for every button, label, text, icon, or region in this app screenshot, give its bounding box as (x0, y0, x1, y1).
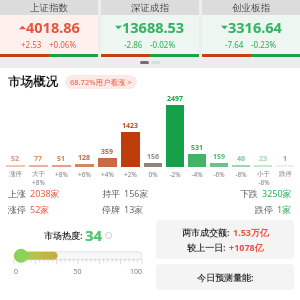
staticText: 68.72%用户看涨 > (70, 77, 132, 87)
staticText: 2038家 (30, 187, 60, 199)
staticText: -6% (213, 170, 225, 179)
button[interactable]: 两市成交额: (156, 220, 294, 259)
staticText: 今日预测量能: (197, 271, 254, 283)
button[interactable]: 市场热度: (6, 220, 150, 282)
staticText: 359 (101, 147, 114, 157)
staticText: -8% (235, 170, 247, 179)
staticText: -4% (191, 170, 203, 179)
staticText: 128 (78, 153, 91, 163)
button[interactable]: 40 (230, 91, 252, 187)
staticText: 持平 (102, 188, 120, 199)
staticText: 跌停 (255, 204, 273, 215)
button[interactable]: 77 (27, 91, 50, 187)
button[interactable]: 2497 (164, 91, 186, 187)
staticText: -0.02% (150, 39, 176, 50)
staticText: 13家 (124, 203, 144, 215)
staticText: 1.53万亿 (233, 226, 269, 238)
staticText: 市场热度: (44, 229, 83, 241)
staticText: 0 (14, 267, 56, 277)
staticText: 52家 (30, 203, 50, 215)
staticText: 小于 (257, 170, 270, 178)
staticText: -0.23% (251, 39, 277, 50)
button[interactable]: 359 (96, 91, 119, 187)
button[interactable]: 68.72%用户看涨 > (65, 75, 137, 89)
button[interactable]: 156 (142, 91, 164, 187)
staticText: 3250家 (262, 187, 292, 199)
staticText: 531 (191, 143, 204, 153)
staticText: +8% (55, 170, 68, 179)
staticText: 100 (99, 267, 142, 277)
staticText: 上证指数 (30, 2, 68, 14)
staticText: 23 (259, 154, 268, 164)
staticText: 跌停 (279, 170, 292, 178)
staticText: +2.53 (21, 39, 42, 50)
other: 说明 (105, 232, 112, 239)
staticText: +1078亿 (229, 241, 264, 253)
staticText: 4018.86 (26, 17, 80, 37)
staticText: 40 (237, 154, 246, 164)
staticText: 34 (85, 225, 103, 245)
staticText: 1 (283, 154, 288, 164)
staticText: 159 (213, 152, 226, 162)
staticText: 创业板指 (232, 2, 270, 14)
staticText: 50 (56, 267, 99, 277)
staticText: +0.06% (49, 39, 77, 50)
staticText: 156 (147, 152, 160, 162)
staticText: -8% (258, 178, 270, 187)
button[interactable]: 23 (252, 91, 274, 187)
button[interactable]: 51 (50, 91, 73, 187)
staticText: 市场概况 (8, 74, 58, 90)
staticText: 77 (34, 154, 43, 164)
staticText: 1423 (122, 121, 139, 131)
staticText: 涨停 (8, 204, 26, 215)
button[interactable]: 159 (208, 91, 230, 187)
staticText: +8% (32, 178, 45, 187)
staticText: 0% (148, 170, 158, 179)
button[interactable]: 52 (4, 91, 27, 187)
staticText: 156家 (124, 187, 149, 199)
staticText: 52 (11, 154, 20, 164)
button[interactable]: 今日预测量能: (156, 264, 294, 290)
button[interactable]: 上证指数 (0, 0, 98, 57)
staticText: 涨停 (9, 170, 22, 178)
staticText: +6% (78, 170, 91, 179)
staticText: -2.86 (124, 39, 143, 50)
staticText: +2% (124, 170, 137, 179)
button[interactable]: 128 (73, 91, 96, 187)
button[interactable]: 1423 (119, 91, 142, 187)
staticText: 13688.53 (122, 17, 185, 37)
staticText: 1家 (277, 203, 292, 215)
staticText: -7.64 (225, 39, 244, 50)
staticText: 两市成交额: (182, 226, 230, 238)
staticText: +4% (101, 170, 114, 179)
button[interactable]: 深证成指 (101, 0, 199, 57)
staticText: 深证成指 (131, 2, 169, 14)
staticText: 较上一日: (187, 241, 226, 253)
staticText: 上涨 (8, 188, 26, 199)
staticText: 3316.64 (228, 17, 282, 37)
staticText: 2497 (167, 94, 184, 104)
button[interactable]: 创业板指 (202, 0, 300, 57)
staticText: -2% (169, 170, 181, 179)
staticText: 大于 (32, 170, 45, 178)
staticText: 下跌 (240, 188, 258, 199)
button[interactable]: 531 (186, 91, 208, 187)
staticText: 51 (57, 154, 66, 164)
button[interactable]: 1 (274, 91, 296, 187)
staticText: 停牌 (102, 204, 120, 215)
